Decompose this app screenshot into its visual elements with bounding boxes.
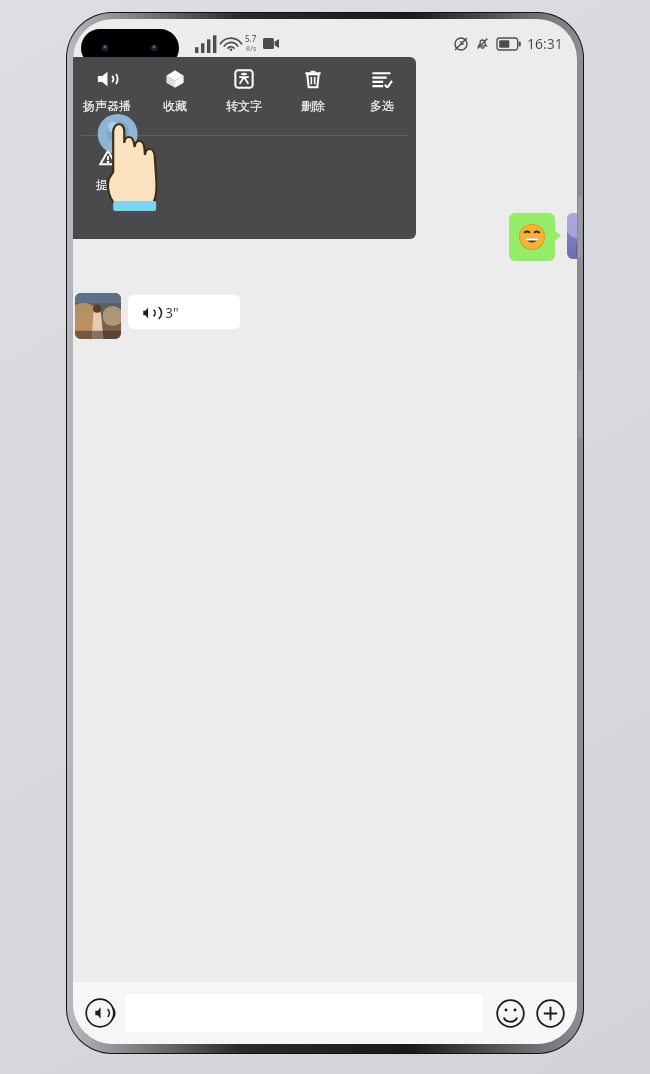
button[interactable]: 扬声器播 [73,67,141,129]
staticText: 多选 [370,98,394,113]
button[interactable] [509,213,561,261]
button[interactable]: 删除 [278,67,347,129]
button[interactable]: 3" [128,295,240,329]
button[interactable]: Avatar [75,293,121,339]
staticText: 扬声器播 [83,98,131,113]
staticText: 转文字 [226,98,262,113]
staticText: 收藏 [163,98,187,113]
button[interactable]: 收藏 [141,67,209,129]
staticText: 16:31 [527,34,563,53]
staticText: 5.7 [245,33,257,44]
staticText: K/s [246,44,257,54]
button[interactable]: Avatar [567,213,577,259]
button[interactable]: 提醒 [73,146,142,208]
staticText: 3" [165,303,179,322]
button[interactable]: 转文字 [209,67,278,129]
button[interactable]: Voice input [83,996,117,1030]
staticText: 提醒 [96,177,120,192]
button[interactable]: More actions [533,996,567,1030]
staticText: 删除 [301,98,325,113]
button[interactable]: Emoji [493,996,527,1030]
button[interactable]: 多选 [347,67,416,129]
